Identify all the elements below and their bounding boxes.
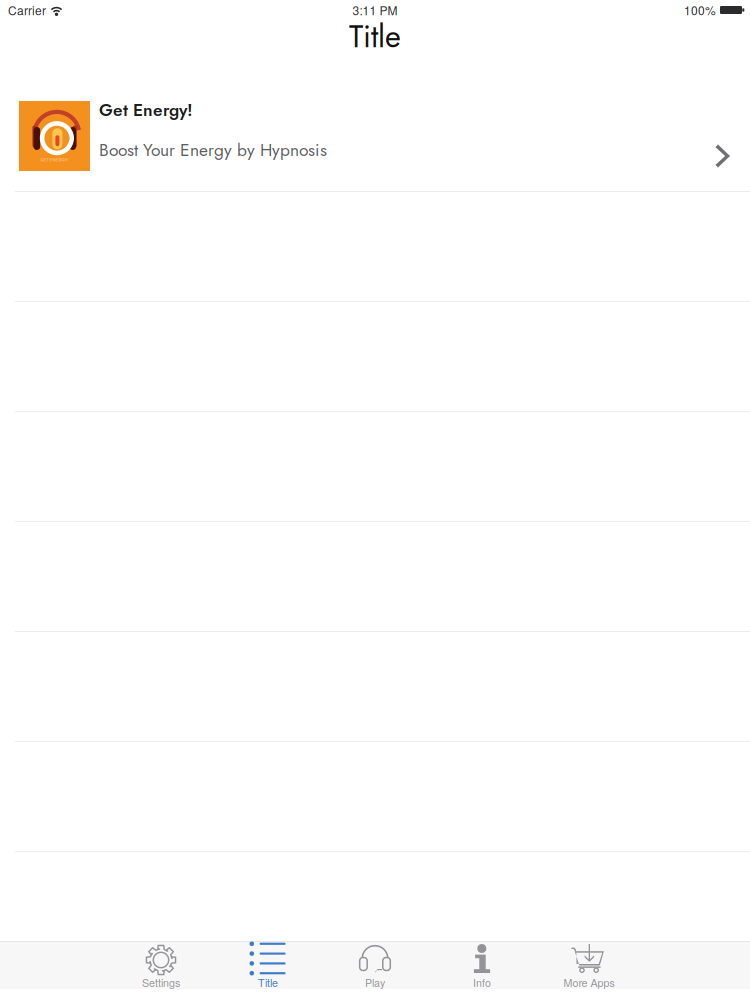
staticText: Play bbox=[365, 975, 385, 990]
button[interactable]: Settings bbox=[107, 942, 214, 989]
button[interactable]: Info bbox=[428, 942, 535, 989]
staticText: Boost Your Energy by Hypnosis bbox=[99, 137, 327, 162]
staticText: 3:11 PM bbox=[352, 1, 397, 19]
button[interactable]: More Apps bbox=[535, 942, 642, 989]
button[interactable]: Play bbox=[321, 942, 428, 989]
button[interactable]: Title bbox=[214, 942, 321, 989]
staticText: Settings bbox=[142, 975, 180, 990]
staticText: Get Energy! bbox=[99, 97, 193, 122]
button[interactable]: GET ENERGY! bbox=[0, 81, 750, 191]
staticText: Title bbox=[258, 975, 278, 990]
staticText: Title bbox=[349, 14, 401, 59]
staticText: GET ENERGY! bbox=[40, 157, 68, 162]
staticText: Info bbox=[473, 975, 491, 990]
staticText: 100% bbox=[684, 1, 716, 19]
staticText: More Apps bbox=[563, 975, 614, 990]
staticText: Carrier bbox=[8, 1, 46, 19]
